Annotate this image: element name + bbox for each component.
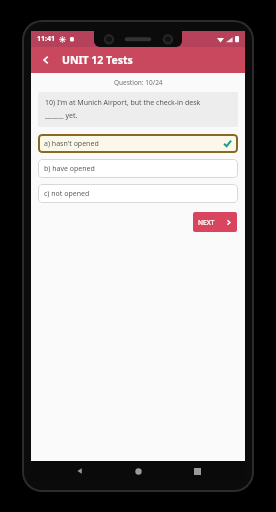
button[interactable]: b) have opened	[38, 159, 238, 178]
button[interactable]: NEXT	[193, 212, 237, 232]
button[interactable]: a) hasn't opened	[38, 134, 238, 153]
staticText: b) have opened	[44, 164, 95, 174]
staticText: a) hasn't opened	[44, 139, 99, 149]
staticText: c) not opened	[44, 189, 90, 199]
button[interactable]: Home	[128, 461, 148, 481]
staticText: UNIT 12 Tests	[62, 53, 133, 67]
button[interactable]: Recent apps	[187, 461, 207, 481]
button[interactable]: Back	[36, 50, 56, 70]
staticText: Question: 10/24	[114, 78, 163, 87]
staticText: 11:41	[37, 34, 55, 44]
staticText: NEXT	[198, 218, 215, 227]
staticText: ______ yet.	[45, 111, 78, 121]
button[interactable]: Back	[70, 461, 90, 481]
button[interactable]: c) not opened	[38, 184, 238, 203]
staticText: 10) I'm at Munich Airport, but the check…	[45, 98, 201, 108]
